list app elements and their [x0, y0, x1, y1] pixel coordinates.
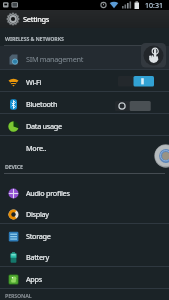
staticText: WIRELESS & NETWORKS — [5, 35, 64, 42]
staticText: Battery — [26, 252, 49, 262]
staticText: Wi-Fi — [26, 77, 42, 87]
staticText: Bluetooth — [26, 99, 58, 109]
button[interactable]: SIM management — [0, 46, 169, 70]
staticText: Display — [26, 209, 49, 219]
button[interactable] — [118, 76, 154, 87]
button[interactable]: Display — [0, 202, 169, 224]
staticText: More.. — [26, 143, 47, 153]
staticText: DEVICE — [5, 163, 23, 170]
button[interactable]: Wi-Fi — [0, 70, 169, 92]
button[interactable]: More.. — [0, 136, 169, 158]
button[interactable]: Apps — [0, 267, 169, 289]
staticText: Storage — [26, 231, 51, 241]
staticText: Data usage — [26, 121, 62, 131]
button[interactable] — [115, 101, 151, 111]
button[interactable] — [141, 43, 166, 68]
staticText: 10:31 — [145, 1, 163, 11]
staticText: Settings — [23, 14, 50, 24]
button[interactable]: Settings — [0, 10, 169, 28]
staticText: Apps — [26, 274, 42, 284]
staticText: PERSONAL — [5, 292, 32, 299]
staticText: SIM management — [26, 54, 83, 64]
button[interactable]: Data usage — [0, 114, 169, 136]
button[interactable]: Battery — [0, 245, 169, 267]
staticText: Audio profiles — [26, 188, 70, 198]
button[interactable]: Audio profiles — [0, 181, 169, 203]
button[interactable]: Storage — [0, 224, 169, 246]
button[interactable]: Bluetooth — [0, 92, 169, 114]
button[interactable] — [154, 144, 169, 168]
